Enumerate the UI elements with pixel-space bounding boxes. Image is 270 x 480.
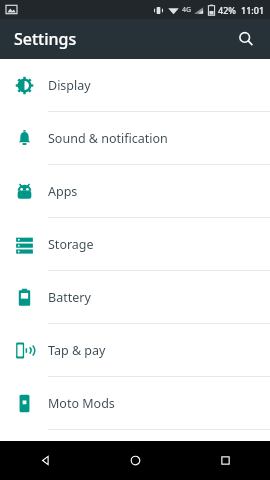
staticText: Settings bbox=[14, 28, 77, 50]
staticText: Display bbox=[48, 77, 91, 94]
button[interactable]: Display bbox=[0, 59, 270, 111]
button[interactable]: Battery bbox=[0, 271, 270, 323]
staticText: Storage bbox=[48, 236, 94, 253]
staticText: Battery bbox=[48, 289, 91, 306]
button[interactable]: Recent apps bbox=[180, 441, 270, 480]
staticText: Tap & pay bbox=[48, 342, 106, 359]
staticText: Moto Mods bbox=[48, 395, 115, 412]
staticText: Apps bbox=[48, 183, 78, 200]
button[interactable]: Home bbox=[90, 441, 180, 480]
staticText: 11:01 bbox=[241, 4, 265, 16]
button[interactable]: Sound & notification bbox=[0, 112, 270, 164]
button[interactable]: Back bbox=[0, 441, 90, 480]
staticText: Sound & notification bbox=[48, 130, 168, 147]
button[interactable]: Storage bbox=[0, 218, 270, 270]
button[interactable]: Apps bbox=[0, 165, 270, 217]
staticText: 4G bbox=[182, 5, 192, 15]
button[interactable]: Moto Mods bbox=[0, 377, 270, 429]
button[interactable]: Search bbox=[230, 23, 262, 55]
button[interactable]: Tap & pay bbox=[0, 324, 270, 376]
staticText: 42% bbox=[218, 4, 236, 16]
